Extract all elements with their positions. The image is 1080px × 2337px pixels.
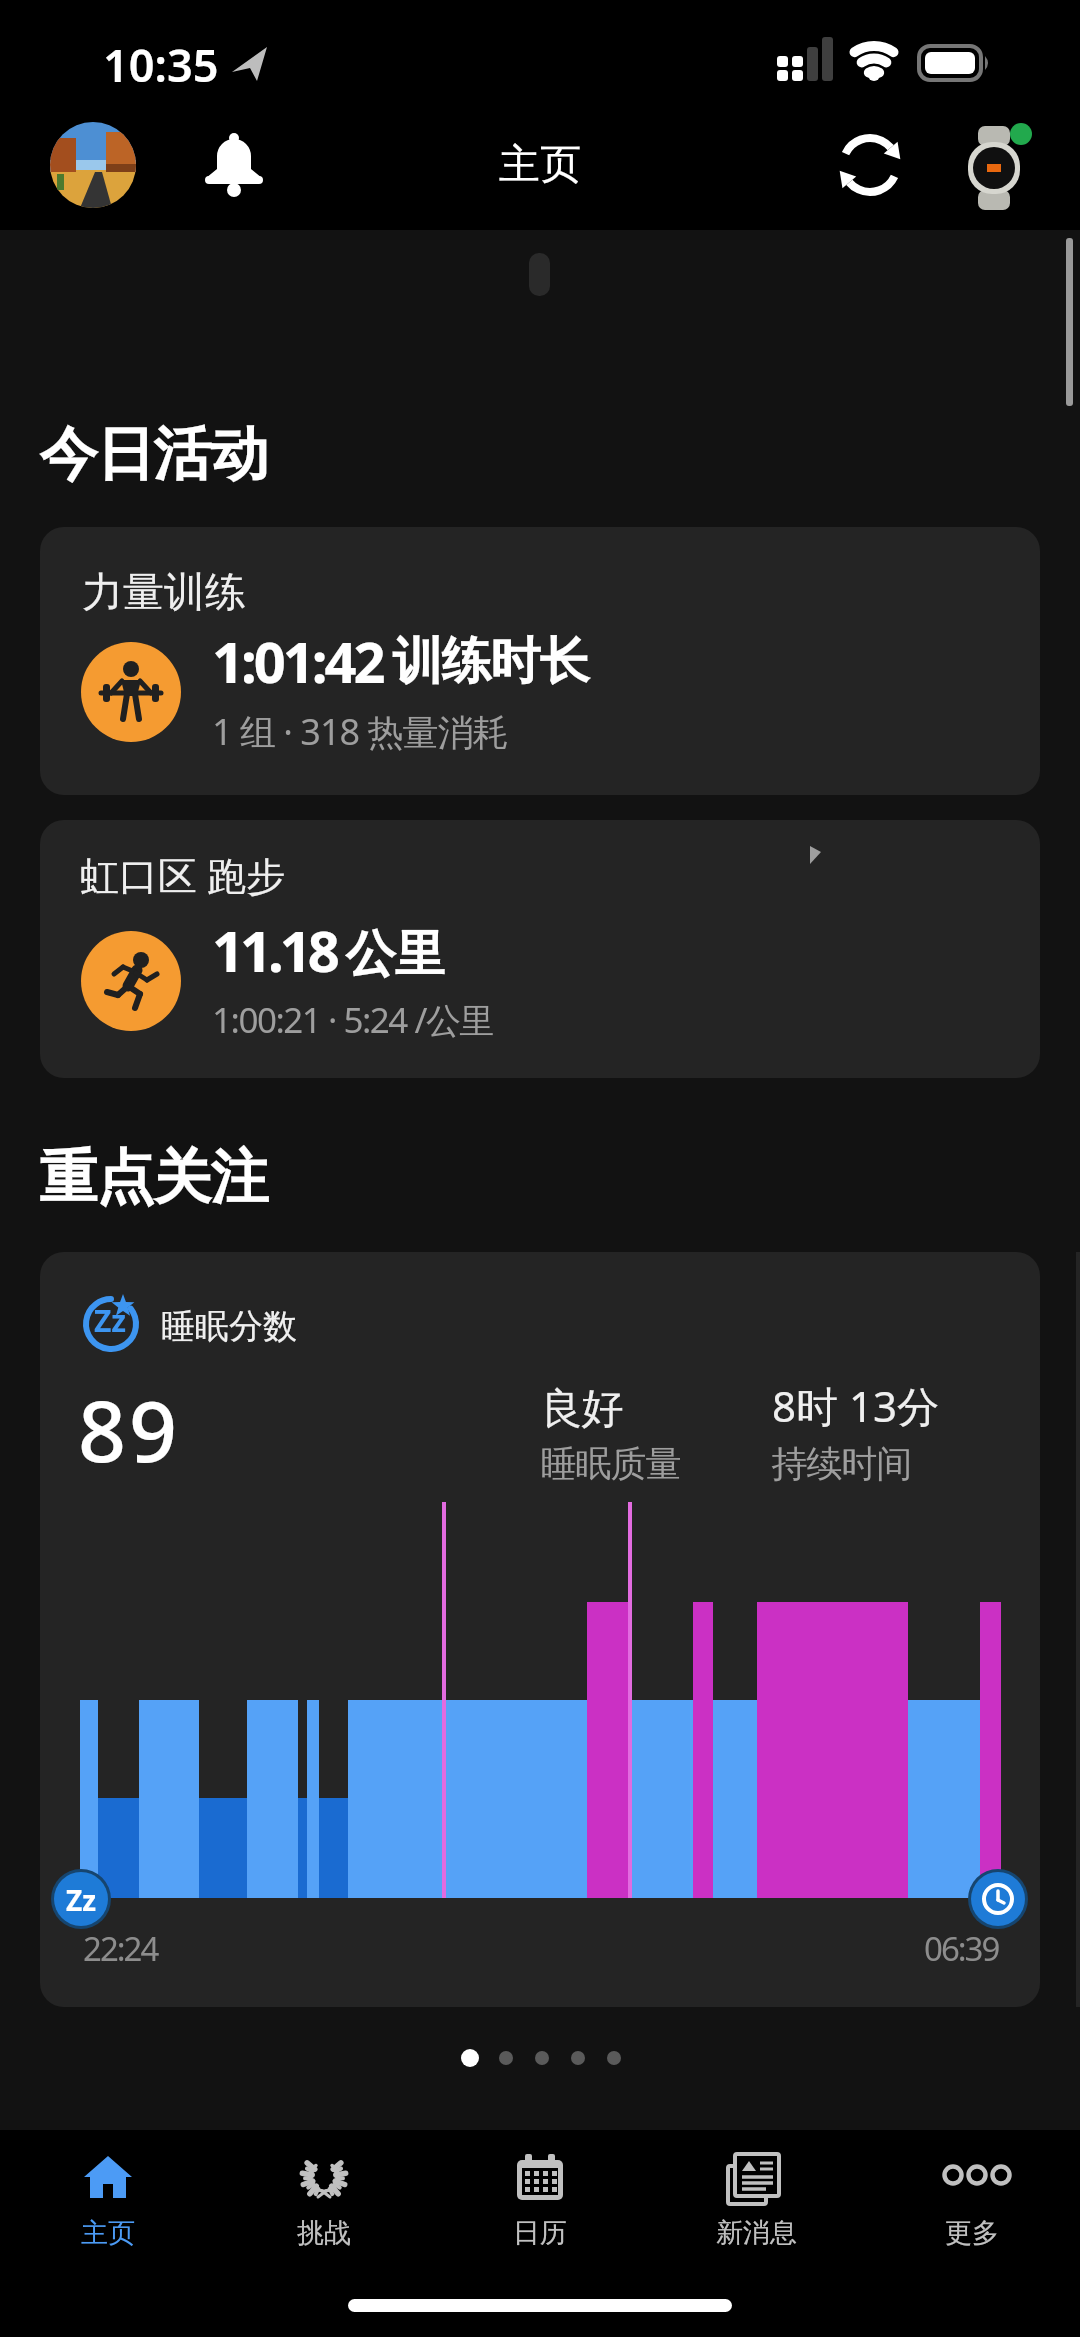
- staticText: 主页: [81, 2216, 135, 2250]
- button[interactable]: [833, 128, 907, 202]
- button[interactable]: 睡眠分数: [40, 1252, 1040, 2007]
- staticText: 公里: [346, 923, 444, 986]
- staticText: 虹口区 跑步: [80, 848, 286, 901]
- staticText: Zz: [94, 1300, 127, 1341]
- staticText: 10:35: [103, 34, 219, 95]
- staticText: 11.18: [212, 912, 336, 988]
- staticText: 睡眠分数: [161, 1305, 297, 1348]
- staticText: 89: [78, 1372, 181, 1486]
- staticText: 1:01:42: [212, 623, 383, 699]
- staticText: Zz: [66, 1881, 97, 1919]
- staticText: 挑战: [297, 2216, 351, 2250]
- button[interactable]: 新消息: [648, 2130, 864, 2337]
- button[interactable]: [200, 130, 268, 198]
- staticText: 1:00:21 · 5:24 /公里: [212, 996, 494, 1044]
- staticText: 持续时间: [772, 1441, 912, 1486]
- staticText: 睡眠质量: [541, 1441, 681, 1486]
- staticText: 今日活动: [40, 418, 268, 491]
- button[interactable]: 日历: [432, 2130, 648, 2337]
- staticText: 06:39: [924, 1926, 999, 1971]
- button[interactable]: 力量训练: [40, 527, 1040, 795]
- staticText: 良好: [541, 1383, 623, 1436]
- button[interactable]: 更多: [864, 2130, 1080, 2337]
- staticText: 1 组 · 318 热量消耗: [212, 707, 508, 756]
- staticText: 新消息: [716, 2216, 797, 2250]
- staticText: 力量训练: [82, 567, 246, 619]
- staticText: 重点关注: [40, 1141, 268, 1214]
- button[interactable]: 挑战: [216, 2130, 432, 2337]
- staticText: 训练时长: [393, 630, 589, 693]
- staticText: 日历: [513, 2216, 567, 2250]
- button[interactable]: 虹口区 跑步: [40, 820, 1040, 1078]
- staticText: 22:24: [83, 1926, 158, 1971]
- button[interactable]: [50, 122, 136, 208]
- staticText: 8时 13分: [772, 1377, 939, 1434]
- staticText: 主页: [0, 139, 1080, 191]
- button[interactable]: [952, 120, 1036, 214]
- staticText: 更多: [945, 2216, 999, 2250]
- button[interactable]: 主页: [0, 2130, 216, 2337]
